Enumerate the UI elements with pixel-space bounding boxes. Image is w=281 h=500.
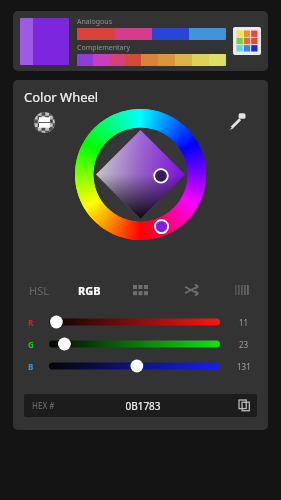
button[interactable]: Swatches (115, 274, 166, 306)
button[interactable]: Palettes (236, 30, 258, 52)
staticText: Complementary (77, 43, 130, 53)
staticText: HEX # (32, 400, 55, 411)
button[interactable]: Random (166, 274, 217, 306)
staticText: 0B1783 (55, 399, 231, 413)
button[interactable]: B (13, 355, 268, 377)
button[interactable] (77, 54, 226, 66)
staticText: RGB (78, 283, 101, 298)
button[interactable]: Shades (217, 274, 268, 306)
button[interactable]: Opacity (34, 112, 55, 133)
button[interactable]: HEX # (24, 394, 257, 417)
button[interactable]: Pick color (228, 112, 247, 131)
button[interactable]: R (13, 311, 268, 333)
button[interactable]: HSL (13, 274, 64, 306)
button[interactable]: G (13, 333, 268, 355)
button[interactable]: Copy hex (231, 394, 257, 417)
button[interactable] (20, 18, 69, 65)
staticText: 11 (239, 317, 249, 328)
staticText: Analogous (77, 17, 112, 27)
staticText: B (28, 361, 34, 372)
staticText: 131 (237, 361, 251, 372)
button[interactable]: RGB (64, 274, 115, 306)
staticText: HSL (29, 283, 49, 298)
staticText: 23 (239, 339, 249, 350)
button[interactable] (77, 28, 226, 40)
button[interactable]: Color wheel (75, 109, 206, 240)
staticText: R (28, 317, 34, 328)
staticText: G (28, 339, 34, 350)
staticText: Color Wheel (24, 88, 99, 106)
